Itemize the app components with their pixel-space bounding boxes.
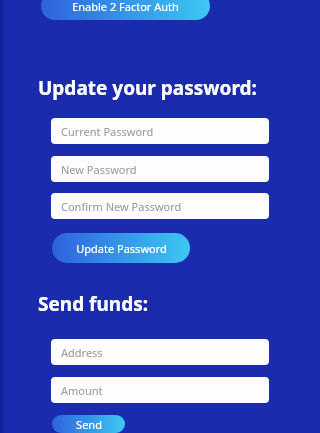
staticText: Update Password (76, 241, 167, 256)
staticText: New Password (61, 162, 137, 177)
button[interactable]: New Password (51, 156, 269, 182)
button[interactable]: Update Password (52, 233, 190, 263)
staticText: Send funds: (38, 291, 149, 317)
staticText: Amount (61, 383, 103, 398)
button[interactable]: Address (51, 339, 269, 365)
button[interactable]: Enable 2 Factor Auth (41, 0, 210, 20)
staticText: Send (76, 417, 102, 432)
staticText: Confirm New Password (61, 199, 182, 214)
staticText: Address (61, 345, 103, 360)
staticText: Enable 2 Factor Auth (72, 0, 179, 14)
button[interactable]: Current Password (51, 118, 269, 144)
button[interactable]: Send funds (52, 415, 125, 433)
button[interactable]: Amount (51, 377, 269, 403)
staticText: Current Password (61, 124, 154, 139)
staticText: Update your password: (38, 75, 257, 101)
button[interactable]: Confirm New Password (51, 193, 269, 219)
